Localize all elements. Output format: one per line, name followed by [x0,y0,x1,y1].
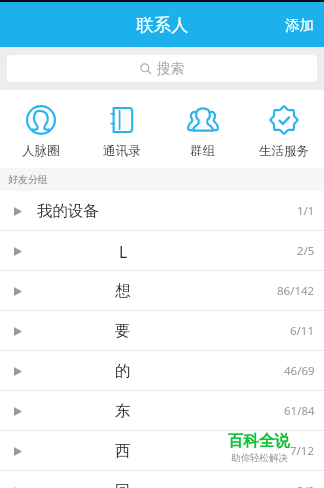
staticText: 联系人 [136,14,189,36]
button[interactable]: 添加 [273,2,324,47]
staticText: 想 [115,281,131,301]
staticText: 西 [115,441,131,461]
staticText: 7/12 [290,443,315,459]
button[interactable]: 回 [0,471,324,488]
staticText: 86/142 [277,283,315,299]
staticText: 群组 [190,143,215,159]
button[interactable]: 搜索 [7,55,317,82]
button[interactable]: 要 [0,311,324,351]
staticText: 2/5 [297,243,315,259]
staticText: 的 [115,361,131,381]
button[interactable]: 通讯录 [81,90,162,168]
staticText: 通讯录 [103,143,141,159]
staticText: 搜索 [157,60,184,77]
staticText: 6/11 [290,323,315,339]
button[interactable]: 西 [0,431,324,471]
staticText: 好友分组 [8,173,48,186]
button[interactable]: 群组 [162,90,243,168]
staticText: 人脉圈 [22,143,60,159]
staticText: 我的设备 [37,201,99,221]
button[interactable]: 我的设备 [0,191,324,231]
staticText: 助你轻松解决 [231,452,288,464]
staticText: 百科全说 [228,431,290,451]
staticText: 生活服务 [259,143,309,159]
button[interactable]: 东 [0,391,324,431]
button[interactable]: 人脉圈 [0,90,81,168]
button[interactable]: 生活服务 [243,90,324,168]
button[interactable]: L [0,231,324,271]
staticText: 1/1 [297,203,315,219]
button[interactable]: 的 [0,351,324,391]
staticText: 46/69 [284,363,315,379]
staticText: 3/9 [297,483,315,488]
staticText: 添加 [285,16,314,34]
staticText: 回 [115,481,131,488]
button[interactable]: 想 [0,271,324,311]
staticText: 要 [115,321,131,341]
staticText: L [119,241,128,262]
staticText: 东 [115,401,131,421]
staticText: 61/84 [284,403,315,419]
